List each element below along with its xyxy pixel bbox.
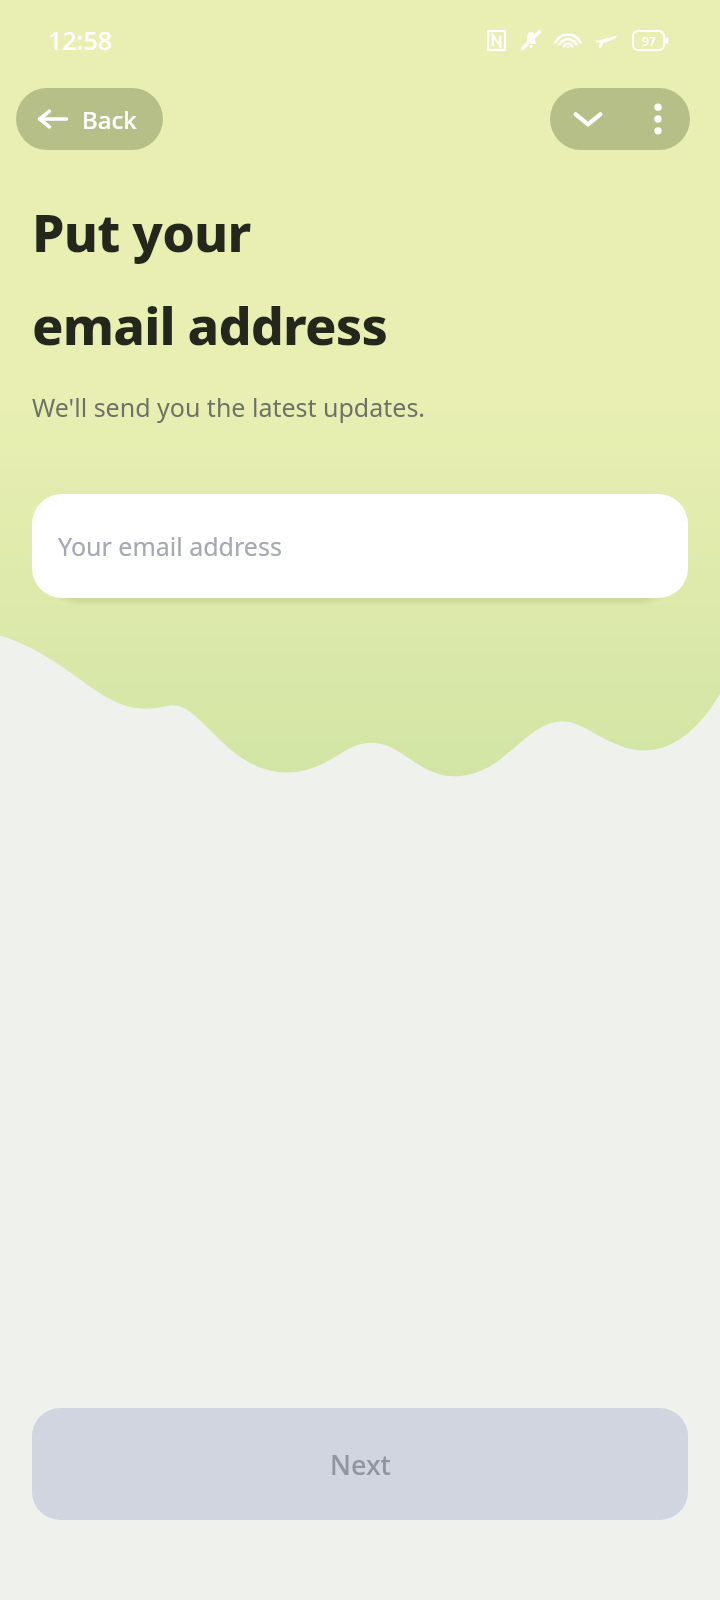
- staticText: Next: [330, 1446, 391, 1483]
- button[interactable]: Collapse: [550, 88, 626, 150]
- button[interactable]: More options: [626, 88, 690, 150]
- staticText: email address: [32, 289, 388, 360]
- staticText: Back: [82, 103, 137, 136]
- button[interactable]: Your email address: [32, 494, 688, 598]
- staticText: Put your: [32, 196, 251, 267]
- staticText: 12:58: [48, 23, 113, 57]
- button[interactable]: Next: [32, 1408, 688, 1520]
- staticText: We'll send you the latest updates.: [32, 390, 426, 424]
- button[interactable]: Back: [16, 88, 163, 150]
- staticText: Your email address: [58, 529, 282, 563]
- staticText: 97: [642, 33, 656, 49]
